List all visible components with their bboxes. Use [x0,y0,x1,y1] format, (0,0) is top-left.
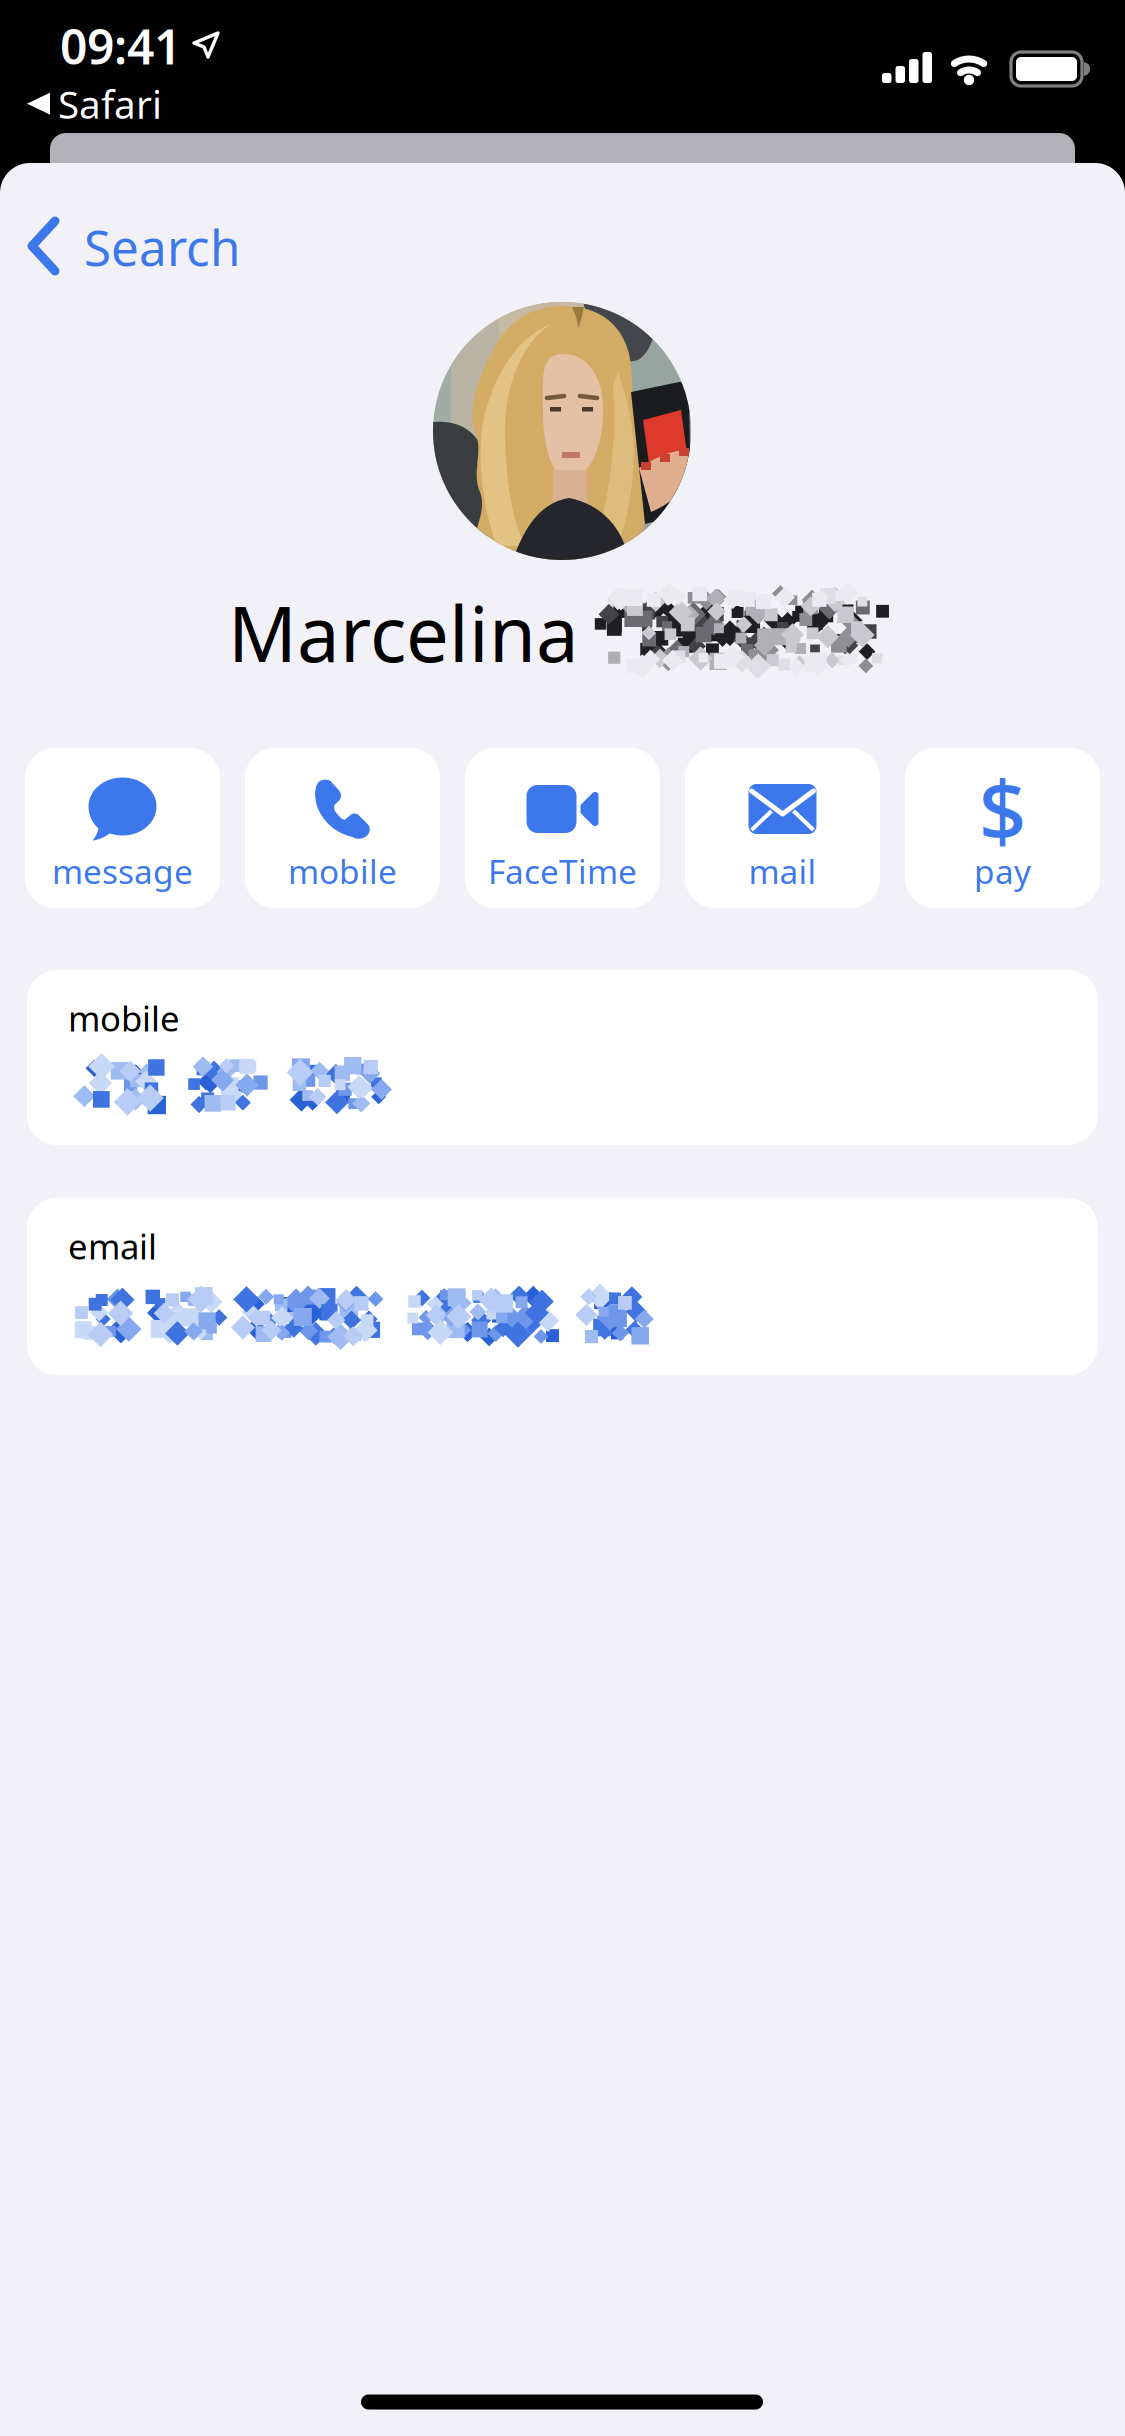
staticText: Marcelina [228,582,579,683]
staticText: 09:41 [60,14,181,78]
staticText: $ [978,753,1026,865]
staticText: Safari [58,78,162,129]
staticText: FaceTime [488,849,637,893]
button[interactable]: mobile [27,970,1098,1145]
button[interactable]: $ [905,748,1100,908]
staticText: pay [974,849,1031,893]
button[interactable]: mobile [245,748,440,908]
button[interactable]: FaceTime [465,748,660,908]
button[interactable]: message [25,748,220,908]
staticText: email [68,1223,157,1269]
staticText: mail [748,849,816,893]
button[interactable]: mail [685,748,880,908]
staticText: Search [84,214,240,279]
staticText: mobile [68,995,180,1041]
staticText: mobile [288,849,397,893]
button[interactable]: email [27,1198,1098,1375]
button[interactable]: Back to Search [20,210,270,285]
button[interactable]: Back to Safari [27,78,162,129]
staticText: message [52,849,193,893]
